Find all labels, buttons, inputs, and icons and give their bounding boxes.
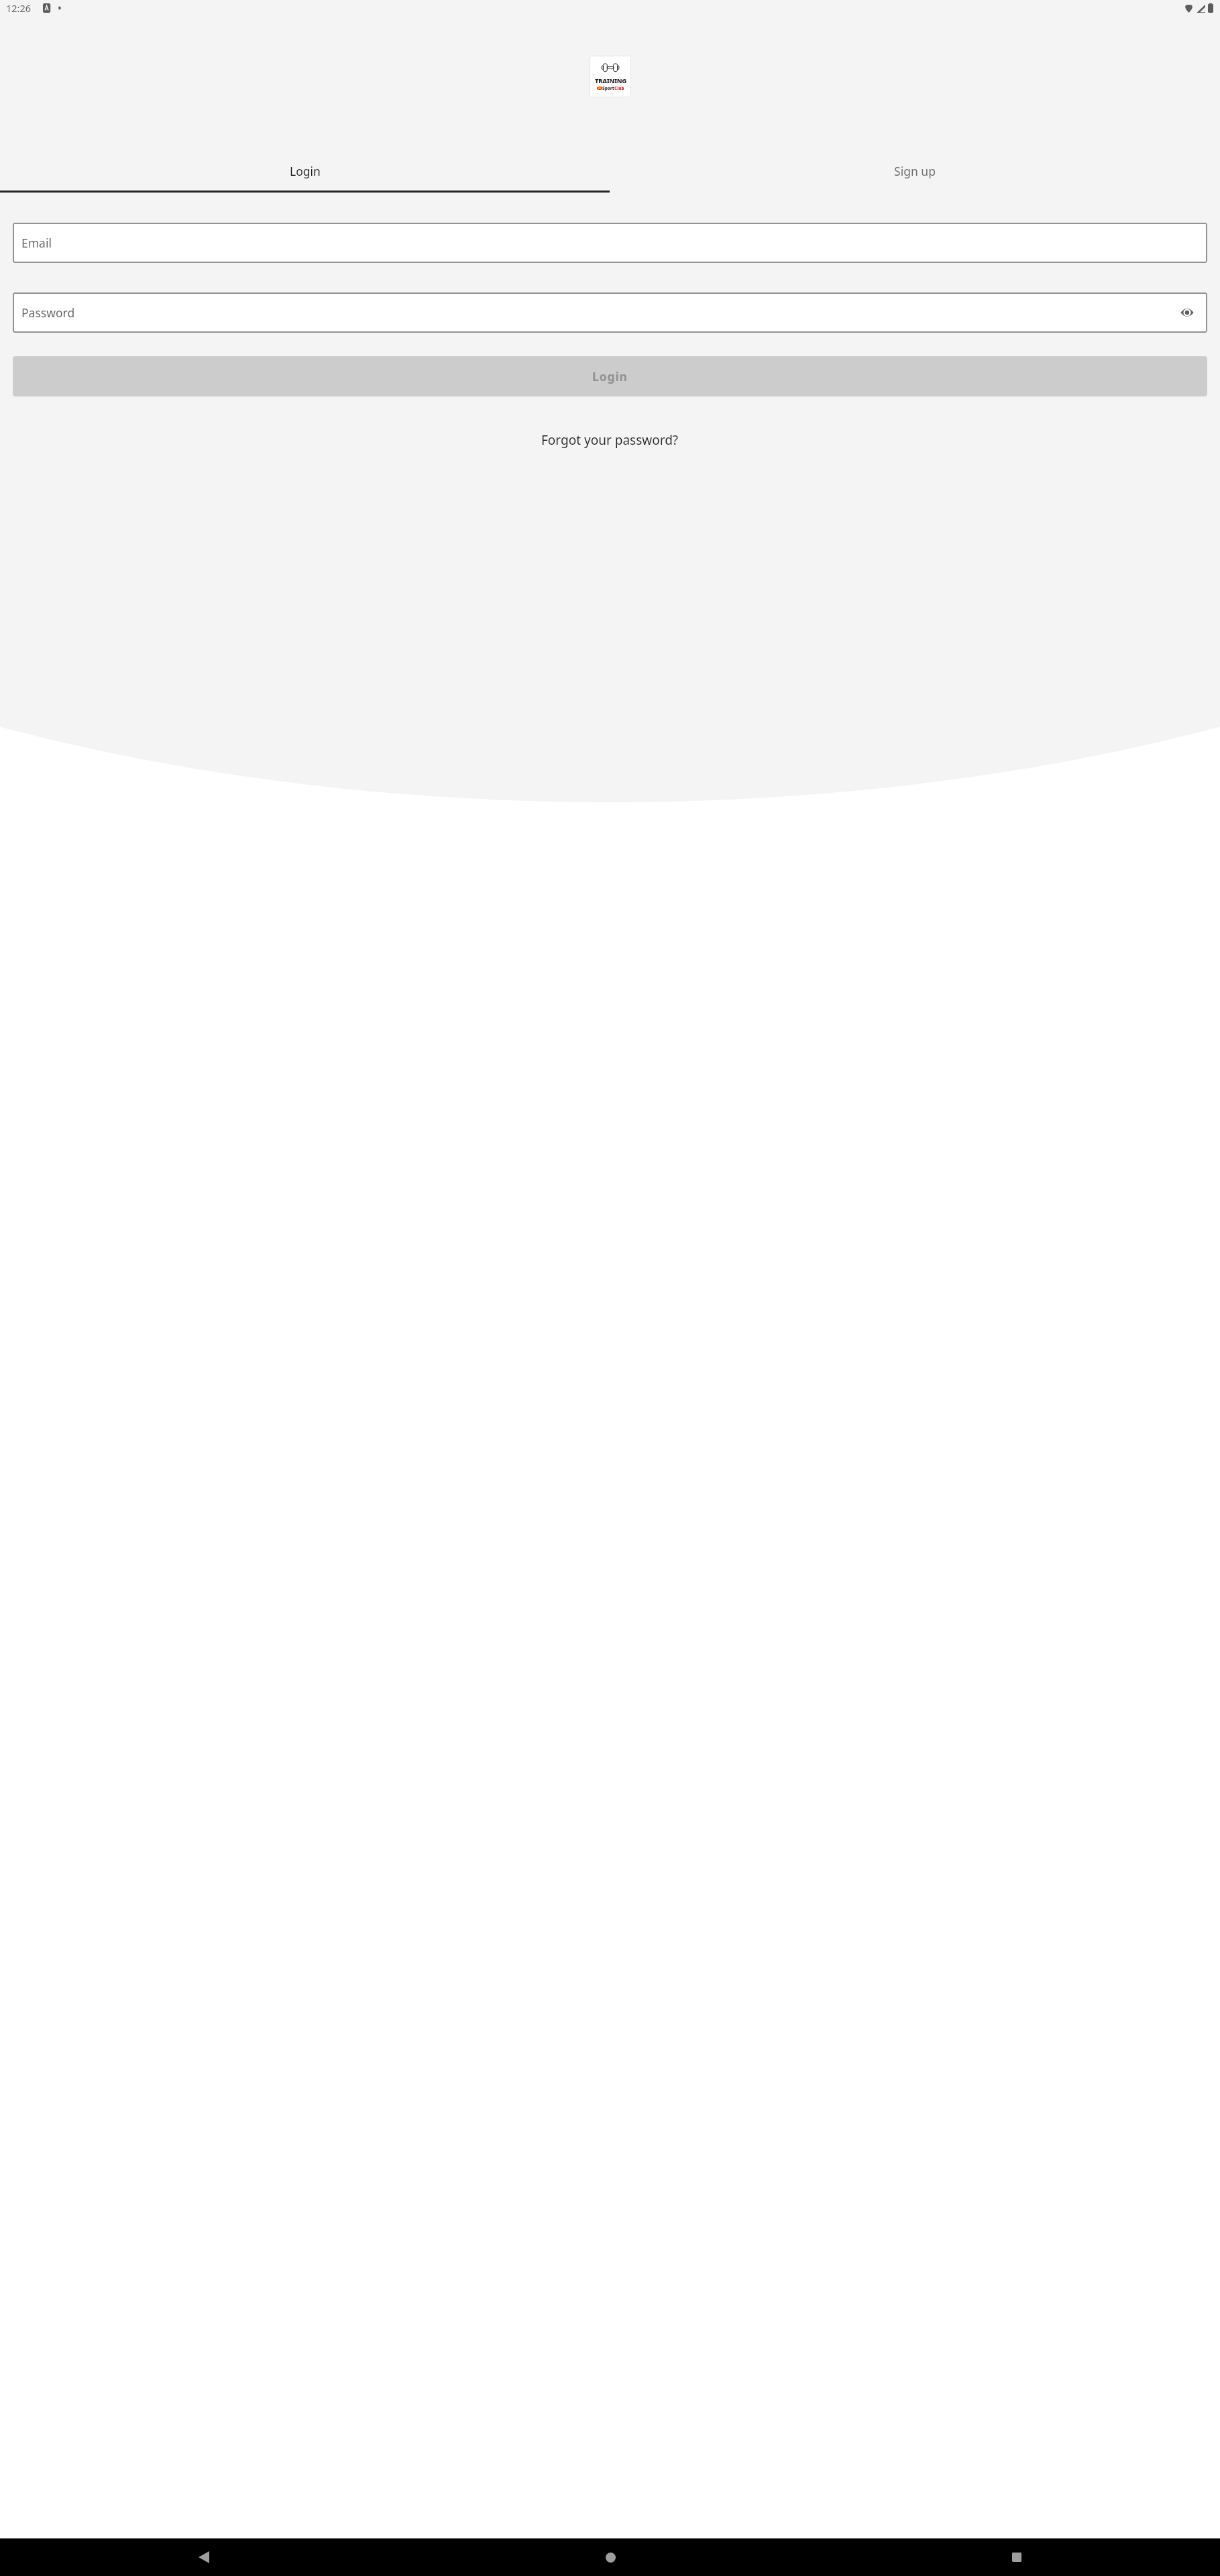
button[interactable]: Home — [407, 2538, 814, 2576]
button[interactable]: Recent apps — [814, 2538, 1220, 2576]
staticText: Email — [21, 235, 52, 251]
button[interactable]: Show password — [1176, 301, 1199, 324]
staticText: Sign up — [894, 163, 936, 179]
button[interactable]: Sign up — [610, 152, 1220, 191]
button[interactable]: Back — [0, 2538, 407, 2576]
staticText: 12:26 — [6, 1, 32, 15]
staticText: Login — [592, 368, 628, 384]
staticText: Sport — [602, 85, 614, 91]
button[interactable]: Email — [13, 223, 1207, 263]
button[interactable]: Password — [13, 292, 1207, 333]
button[interactable]: Login — [13, 356, 1207, 396]
staticText: TRAINING — [595, 76, 626, 85]
staticText: Club — [614, 85, 624, 91]
button[interactable]: Login — [0, 152, 610, 191]
staticText: Login — [290, 163, 321, 179]
button[interactable]: Forgot your password? — [0, 423, 1220, 458]
staticText: Password — [21, 305, 75, 321]
staticText: Forgot your password? — [541, 431, 679, 449]
